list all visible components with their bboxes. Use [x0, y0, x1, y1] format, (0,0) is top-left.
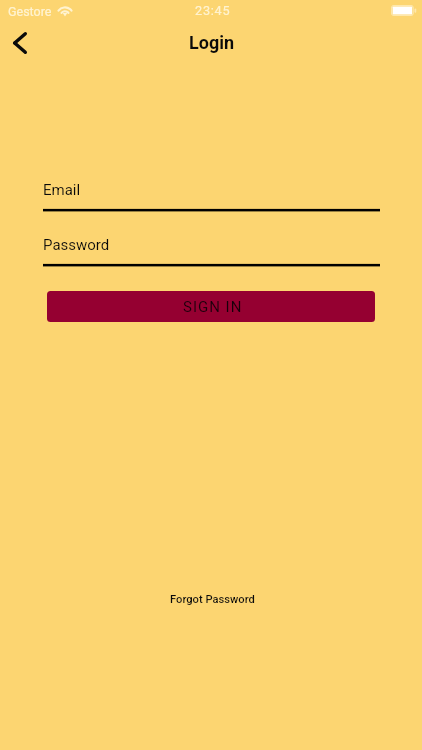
staticText: Login [189, 32, 235, 53]
staticText: SIGN IN [183, 298, 243, 316]
staticText: Email [43, 181, 81, 199]
button[interactable]: Forgot Password [160, 587, 265, 612]
staticText: Password [43, 236, 110, 254]
button[interactable]: Back [0, 21, 40, 65]
staticText: Forgot Password [170, 593, 255, 606]
button[interactable]: Email [43, 181, 380, 212]
button[interactable]: Password [43, 236, 380, 267]
staticText: Gestore [8, 4, 52, 19]
button[interactable]: SIGN IN [47, 291, 375, 322]
staticText: 23:45 [195, 3, 231, 18]
